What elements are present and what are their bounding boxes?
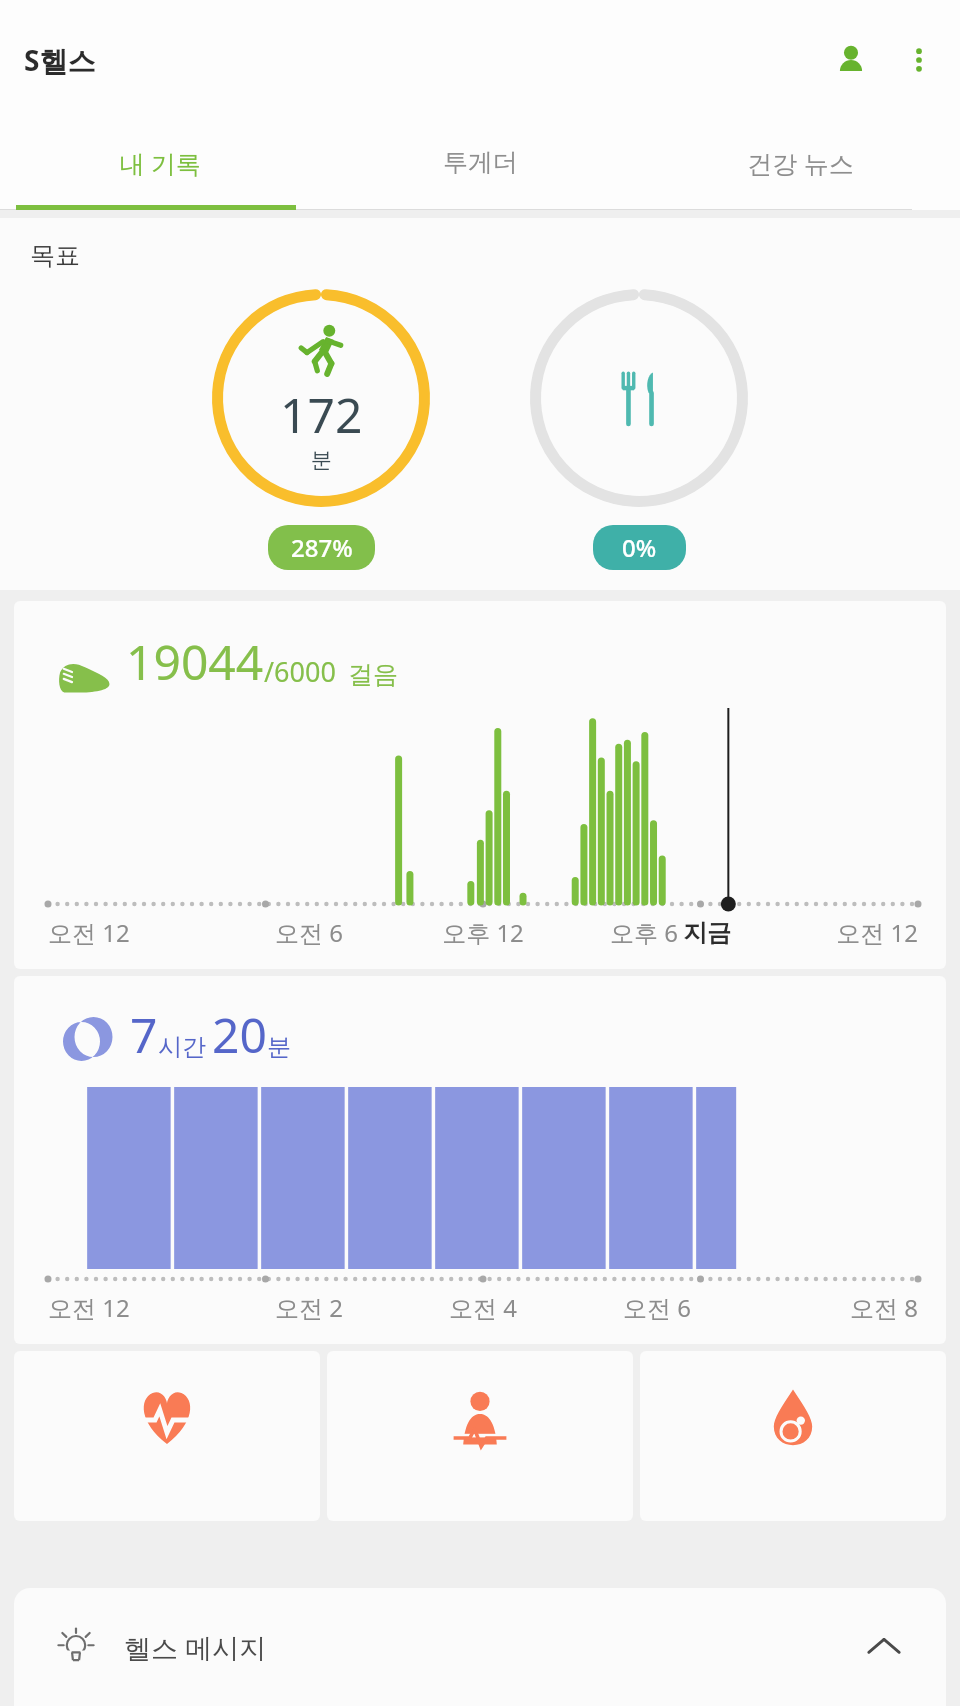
button[interactable]: 0% [528,287,750,570]
staticText: 오전 6 [570,1291,744,1324]
staticText: 오전 8 [744,1291,918,1324]
button[interactable]: 19044 [14,601,946,969]
button[interactable]: 172 [210,287,432,570]
staticText: 172 [280,382,363,447]
staticText: /6000 [264,653,336,690]
staticText: 분 [267,1032,291,1062]
button[interactable]: 헬스 메시지 [14,1588,946,1706]
staticText: 오전 2 [222,1291,396,1324]
staticText: 헬스 메시지 [124,1629,267,1666]
button[interactable]: 7 [14,976,946,1344]
staticText: 오전 6 [222,916,396,949]
staticText: S헬스 [24,41,96,79]
button[interactable]: 투게더 [320,120,640,205]
button[interactable]: More options [892,33,946,87]
staticText: 시간 [158,1032,206,1062]
staticText: 내 기록 [119,146,201,180]
staticText: 걸음 [348,659,398,690]
staticText: 0% [622,531,657,564]
staticText: 19044 [126,629,264,694]
staticText: 건강 뉴스 [747,146,854,180]
staticText: 투게더 [443,147,518,178]
staticText: 분 [311,447,332,473]
staticText: 오후 6 [610,916,678,949]
staticText: 287% [291,531,353,564]
button[interactable]: Expand [858,1621,910,1673]
button[interactable]: Stress [327,1351,633,1521]
staticText: 오후 12 [396,916,570,949]
button[interactable]: 건강 뉴스 [640,120,960,205]
staticText: 오전 12 [48,916,222,949]
button[interactable]: Oxygen saturation [640,1351,946,1521]
button[interactable]: Heart rate [14,1351,320,1521]
staticText: 7 [130,1002,158,1067]
staticText: 오전 12 [770,916,918,949]
button[interactable]: 내 기록 [0,120,320,205]
staticText: 오전 4 [396,1291,570,1324]
button[interactable]: Profile [824,33,878,87]
staticText: 목표 [30,240,80,271]
staticText: 20 [212,1002,267,1067]
staticText: 오전 12 [48,1291,222,1324]
staticText: 지금 [683,918,731,948]
